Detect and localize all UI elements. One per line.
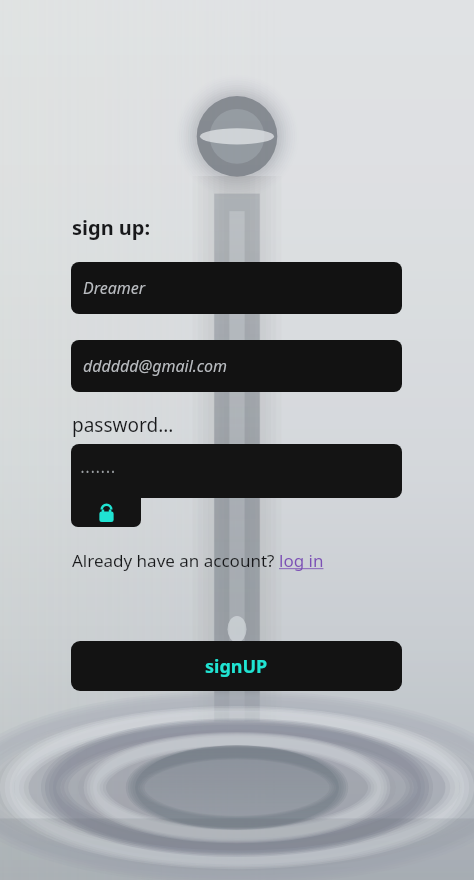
staticText: log in [279,549,324,572]
button[interactable]: Toggle password visibility [71,498,141,527]
button[interactable]: log in [279,549,324,572]
staticText: dddddd@gmail.com [83,355,228,377]
staticText: sign up: [72,214,151,241]
button[interactable]: dddddd@gmail.com [71,340,402,392]
staticText: signUP [205,654,268,679]
staticText: Already have an account? [72,549,279,572]
button[interactable]: signUP [71,641,402,691]
staticText: password... [72,412,174,438]
staticText: Dreamer [83,277,146,299]
staticText: • • • • • • • [81,466,115,477]
button[interactable]: Dreamer [71,262,402,314]
button[interactable]: • • • • • • • [71,444,402,498]
